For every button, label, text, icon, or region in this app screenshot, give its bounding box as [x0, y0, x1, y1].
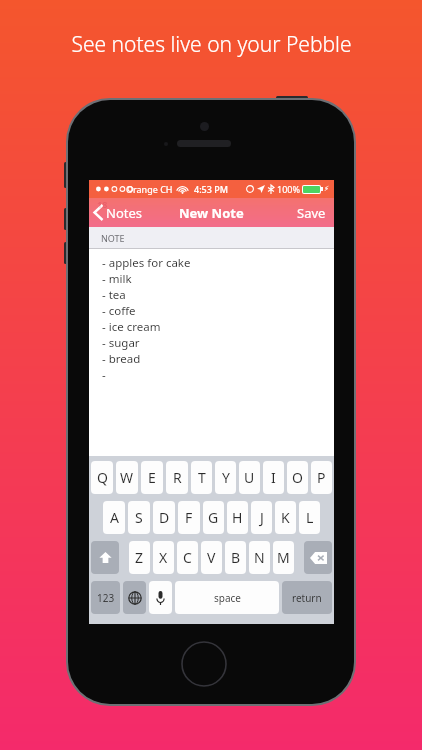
- staticText: 100%: [277, 183, 300, 195]
- staticText: Q: [97, 468, 108, 487]
- staticText: R: [173, 468, 182, 487]
- button[interactable]: F: [178, 501, 200, 534]
- staticText: space: [214, 591, 241, 605]
- staticText: - sugar: [102, 335, 140, 351]
- staticText: - ice cream: [102, 319, 161, 335]
- staticText: L: [306, 508, 314, 527]
- staticText: J: [260, 508, 264, 527]
- staticText: - apples for cake: [102, 255, 191, 271]
- staticText: W: [120, 468, 134, 487]
- staticText: C: [183, 548, 192, 567]
- button[interactable]: Y: [215, 461, 236, 494]
- button[interactable]: Shift: [91, 541, 119, 574]
- staticText: 123: [97, 591, 115, 605]
- button[interactable]: Save: [297, 198, 326, 227]
- button[interactable]: A: [103, 501, 125, 534]
- staticText: - tea: [102, 287, 126, 303]
- staticText: I: [271, 468, 276, 487]
- button[interactable]: 123: [91, 581, 120, 614]
- button[interactable]: V: [201, 541, 222, 574]
- button[interactable]: Z: [129, 541, 150, 574]
- button[interactable]: M: [273, 541, 294, 574]
- staticText: K: [281, 508, 290, 527]
- staticText: U: [244, 468, 255, 487]
- staticText: Y: [222, 468, 230, 487]
- staticText: S: [135, 508, 143, 527]
- staticText: 18: [97, 198, 108, 210]
- staticText: See notes live on your Pebble: [71, 30, 352, 59]
- button[interactable]: I: [263, 461, 284, 494]
- staticText: B: [231, 548, 241, 567]
- button[interactable]: O: [287, 461, 308, 494]
- staticText: Z: [135, 548, 144, 567]
- staticText: - coffe: [102, 303, 136, 319]
- staticText: - bread: [102, 351, 141, 367]
- staticText: 4:53 PM: [194, 183, 228, 195]
- staticText: F: [185, 508, 193, 527]
- button[interactable]: T: [191, 461, 212, 494]
- button[interactable]: B: [225, 541, 246, 574]
- button[interactable]: Change keyboard: [123, 581, 146, 614]
- button[interactable]: Notes: [94, 198, 142, 227]
- button[interactable]: S: [128, 501, 150, 534]
- staticText: P: [317, 468, 326, 487]
- staticText: T: [198, 468, 206, 487]
- staticText: Save: [297, 204, 326, 222]
- button[interactable]: J: [251, 501, 272, 534]
- staticText: Notes: [106, 204, 142, 222]
- staticText: V: [207, 548, 216, 567]
- staticText: A: [110, 508, 119, 527]
- button[interactable]: Dictation: [149, 581, 172, 614]
- staticText: E: [148, 468, 156, 487]
- button[interactable]: E: [141, 461, 163, 494]
- button[interactable]: H: [227, 501, 248, 534]
- button[interactable]: G: [203, 501, 224, 534]
- staticText: D: [159, 508, 170, 527]
- staticText: ⚡: [324, 185, 329, 193]
- button[interactable]: L: [299, 501, 320, 534]
- staticText: return: [292, 591, 322, 605]
- staticText: NOTE: [101, 232, 125, 244]
- staticText: -: [102, 367, 106, 383]
- button[interactable]: X: [153, 541, 174, 574]
- button[interactable]: return: [282, 581, 332, 614]
- staticText: M: [277, 548, 290, 567]
- staticText: N: [254, 548, 265, 567]
- button[interactable]: W: [116, 461, 138, 494]
- button[interactable]: U: [239, 461, 260, 494]
- button[interactable]: R: [166, 461, 188, 494]
- button[interactable]: Delete: [304, 541, 332, 574]
- button[interactable]: C: [177, 541, 198, 574]
- staticText: X: [159, 548, 168, 567]
- button[interactable]: D: [153, 501, 175, 534]
- staticText: G: [208, 508, 219, 527]
- staticText: H: [232, 508, 243, 527]
- button[interactable]: Q: [91, 461, 113, 494]
- staticText: New Note: [179, 204, 244, 222]
- staticText: O: [292, 468, 303, 487]
- staticText: - milk: [102, 271, 132, 287]
- button[interactable]: space: [175, 581, 279, 614]
- button[interactable]: K: [275, 501, 296, 534]
- staticText: Orange CH: [126, 183, 173, 195]
- button[interactable]: P: [311, 461, 332, 494]
- button[interactable]: N: [249, 541, 270, 574]
